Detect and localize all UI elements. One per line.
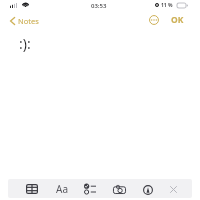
button[interactable]: Close xyxy=(166,182,181,197)
button[interactable]: OK xyxy=(171,14,184,26)
button[interactable]: Notes xyxy=(10,15,39,27)
button[interactable]: Insert table xyxy=(22,180,42,198)
staticText: Notes xyxy=(18,16,39,26)
staticText: 11 % xyxy=(161,2,173,9)
button[interactable]: Aa xyxy=(51,181,73,196)
button[interactable]: More options xyxy=(149,15,159,25)
button[interactable]: Markup xyxy=(139,181,157,199)
button[interactable]: Camera xyxy=(109,181,130,198)
button[interactable]: Checklist xyxy=(80,180,100,198)
staticText: Aa xyxy=(56,182,68,196)
staticText: 03:53 xyxy=(91,2,107,10)
staticText: OK xyxy=(171,14,184,26)
button[interactable]: :): xyxy=(0,30,200,178)
staticText: :): xyxy=(19,34,31,53)
